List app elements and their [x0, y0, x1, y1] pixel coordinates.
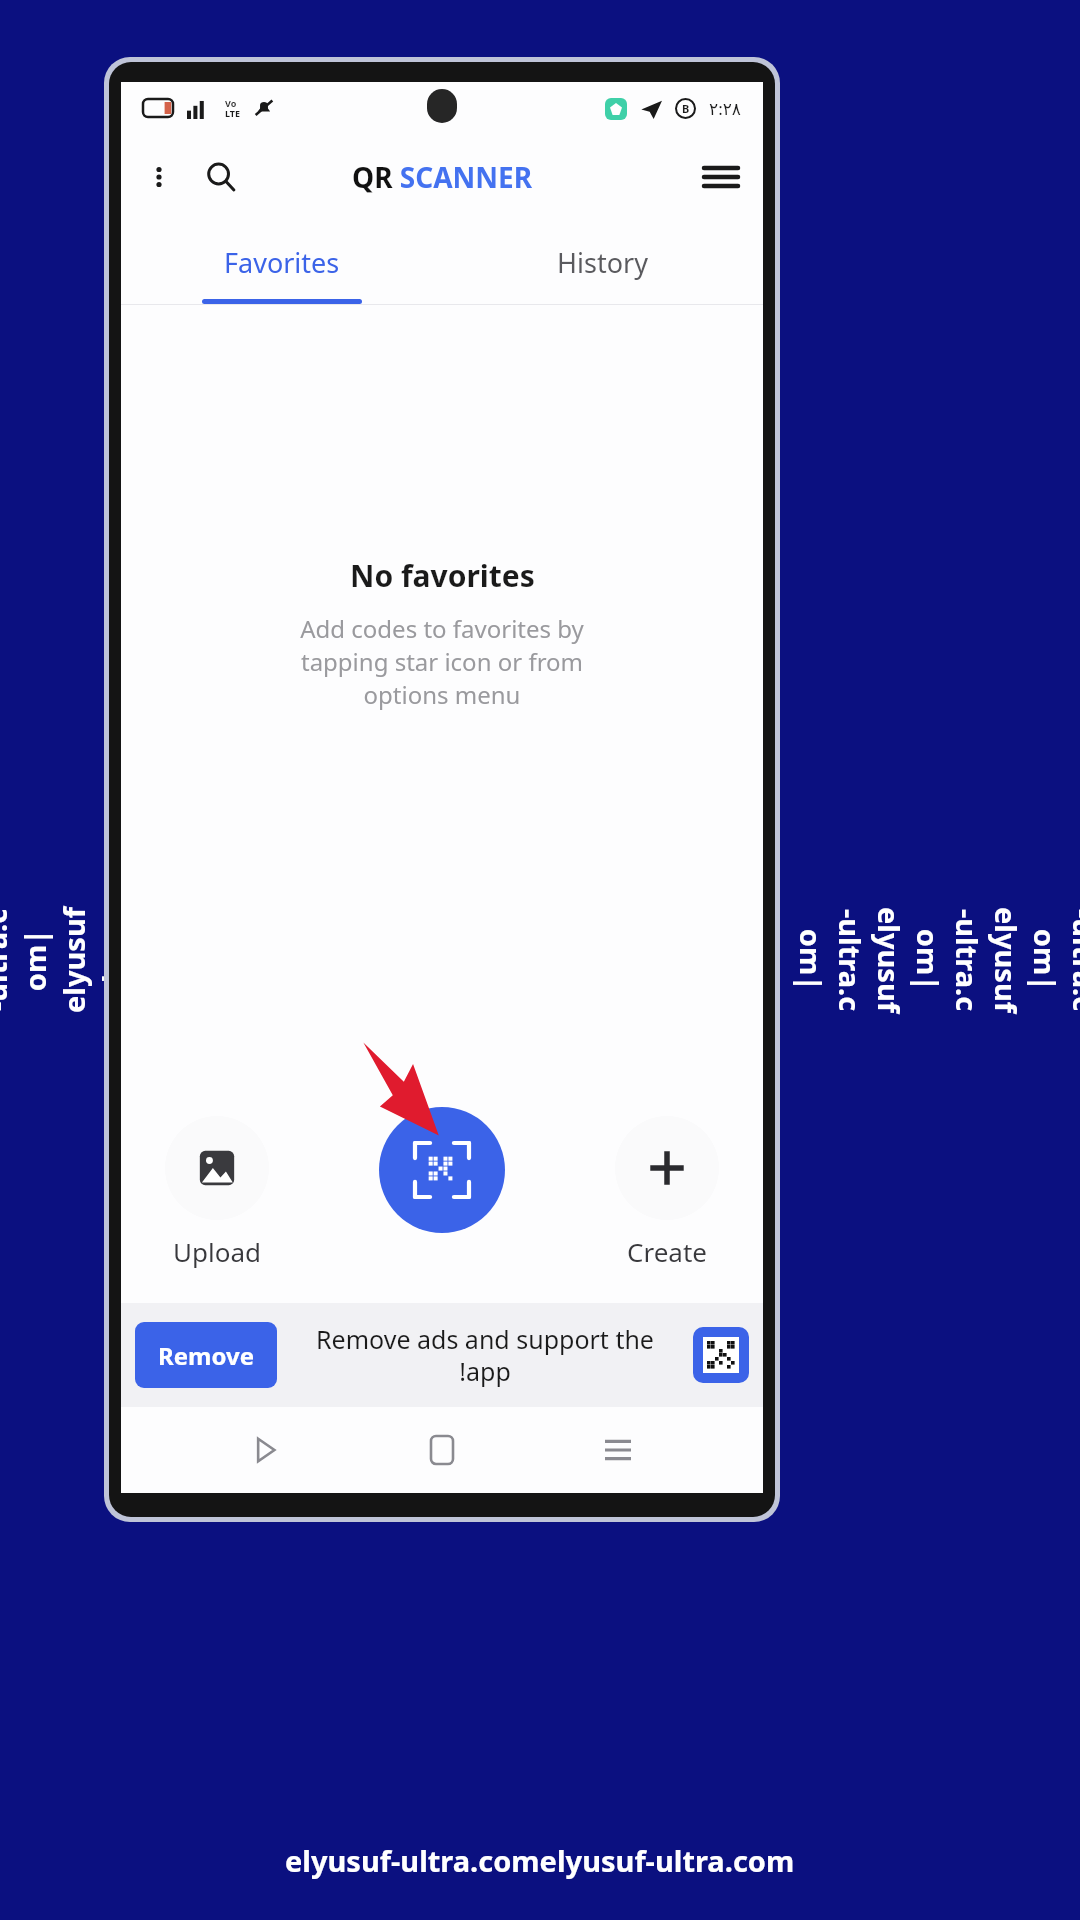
staticText: Remove — [158, 1339, 255, 1372]
staticText: ٢:٢٨ — [709, 97, 741, 120]
button[interactable]: Remove — [135, 1303, 749, 1407]
staticText: B — [682, 101, 690, 116]
button[interactable]: Search — [195, 151, 247, 203]
staticText: QR SCANNER — [352, 158, 533, 196]
staticText: History — [557, 244, 648, 281]
staticText: elyusuf-ultra.com| elyusuf-ultra.com| el… — [792, 906, 1080, 1014]
button[interactable]: Scan QR code — [379, 1107, 505, 1233]
staticText: Remove ads and support the !app — [289, 1322, 681, 1388]
staticText: Create — [627, 1234, 707, 1269]
button[interactable]: Favorites — [121, 220, 442, 304]
staticText: Vo LTE — [225, 97, 241, 119]
staticText: Upload — [173, 1234, 262, 1269]
button[interactable]: Create — [611, 1112, 723, 1273]
button[interactable]: More options — [135, 153, 183, 201]
staticText: Add codes to favorites by tapping star i… — [300, 612, 584, 711]
staticText: elyusuf-ultra.comelyusuf-ultra.com — [285, 1841, 795, 1880]
button[interactable]: Back — [235, 1419, 297, 1481]
staticText: No favorites — [350, 555, 535, 596]
button[interactable]: Upload — [161, 1112, 273, 1273]
button[interactable]: History — [442, 220, 763, 304]
button[interactable]: Home — [411, 1419, 473, 1481]
button[interactable]: Menu — [695, 151, 747, 203]
staticText: Favorites — [224, 244, 340, 281]
button[interactable]: Recents — [587, 1419, 649, 1481]
staticText: elyusuf-ultra.com| elyusuf-ultra.com| el… — [0, 906, 288, 1014]
